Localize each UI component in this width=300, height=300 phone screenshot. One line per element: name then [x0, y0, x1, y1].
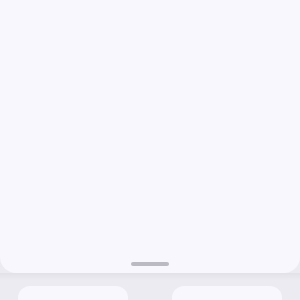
button[interactable]: Drag handle: [122, 253, 178, 271]
